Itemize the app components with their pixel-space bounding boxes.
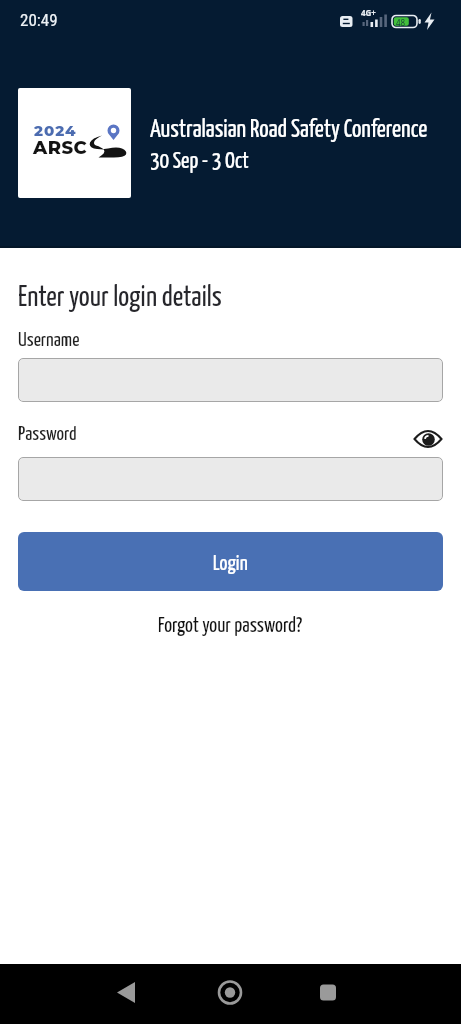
button[interactable] <box>103 969 151 1017</box>
button[interactable]: Forgot your password? <box>158 617 303 637</box>
staticText: Login <box>213 555 248 575</box>
staticText: Enter your login details <box>18 285 222 312</box>
staticText: Username <box>18 331 80 350</box>
button[interactable] <box>18 358 443 402</box>
staticText: 4G+ <box>361 7 376 18</box>
staticText: ARSC <box>33 137 88 159</box>
staticText: 20:49 <box>20 10 58 30</box>
button[interactable] <box>206 969 254 1017</box>
button[interactable] <box>304 969 352 1017</box>
button[interactable] <box>413 428 443 450</box>
staticText: Australasian Road Safety Conference <box>150 119 428 142</box>
button[interactable]: Login <box>18 532 443 591</box>
staticText: Password <box>18 425 77 444</box>
staticText: 30 Sep - 3 Oct <box>150 151 249 173</box>
button[interactable] <box>18 457 443 501</box>
staticText: 48 <box>396 17 406 28</box>
staticText: 2024 <box>34 121 77 139</box>
